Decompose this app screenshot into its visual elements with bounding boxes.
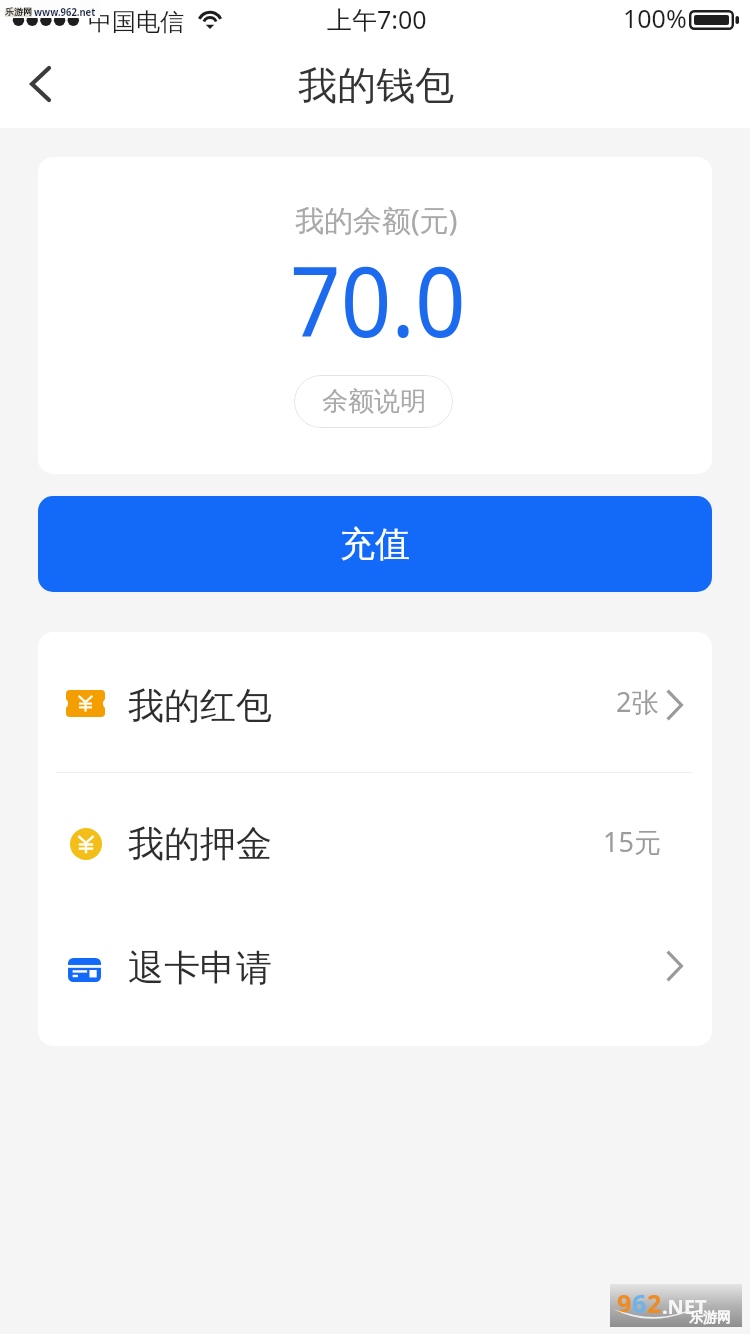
staticText: www.962.net [34,5,96,18]
staticText: 我的余额(元) [295,200,458,240]
staticText: 70.0 [290,233,466,365]
staticText: 乐游网 [5,6,32,17]
staticText: 我的钱包 [298,61,454,110]
button[interactable]: 我的红包 [38,632,712,772]
staticText: 6 [632,1286,647,1320]
staticText: 乐游网 [689,1309,731,1327]
staticText: 100% [623,1,687,35]
button[interactable]: Back [8,50,72,118]
staticText: 上午7:00 [327,2,427,36]
staticText: 我的押金 [128,821,272,866]
button[interactable]: 余额说明 [294,375,453,428]
staticText: .NET [662,1293,707,1320]
button[interactable]: 我的押金 [38,773,712,898]
button[interactable]: 充值 [38,496,712,592]
staticText: 9 [617,1286,632,1320]
staticText: 2张 [616,683,659,720]
staticText: 退卡申请 [128,945,272,990]
staticText: 15元 [603,823,661,860]
staticText: 充值 [340,522,410,566]
staticText: 余额说明 [322,385,426,418]
button[interactable]: 退卡申请 [38,898,712,1046]
staticText: 2 [647,1286,662,1320]
staticText: 我的红包 [128,683,272,728]
staticText: 中国电信 [88,7,184,37]
